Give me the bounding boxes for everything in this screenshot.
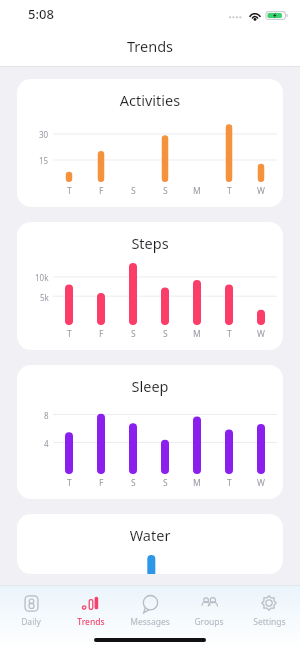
staticText: 4 bbox=[44, 438, 49, 449]
staticText: M bbox=[193, 328, 201, 340]
button[interactable]: Sleep bbox=[17, 365, 283, 499]
other: Settings bbox=[260, 594, 278, 612]
staticText: S bbox=[131, 477, 136, 489]
staticText: 8 bbox=[44, 410, 49, 421]
button[interactable]: Daily bbox=[3, 591, 59, 630]
staticText: Settings bbox=[253, 616, 286, 628]
staticText: F bbox=[99, 185, 104, 197]
other: Daily bbox=[23, 595, 40, 612]
staticText: S bbox=[131, 185, 136, 197]
staticText: S bbox=[131, 328, 136, 340]
staticText: T bbox=[227, 185, 232, 197]
staticText: 5:08 bbox=[28, 5, 54, 23]
button[interactable]: Messages bbox=[122, 591, 178, 630]
staticText: 15 bbox=[39, 155, 49, 166]
other: Messages bbox=[142, 595, 159, 612]
staticText: T bbox=[227, 328, 232, 340]
staticText: Messages bbox=[130, 616, 170, 628]
staticText: W bbox=[257, 185, 265, 197]
staticText: M bbox=[193, 185, 201, 197]
staticText: 5k bbox=[40, 292, 49, 303]
staticText: T bbox=[67, 328, 72, 340]
button[interactable]: Water bbox=[17, 514, 283, 574]
staticText: F bbox=[99, 477, 104, 489]
staticText: Trends bbox=[77, 616, 105, 628]
staticText: 10k bbox=[35, 272, 49, 283]
staticText: Sleep bbox=[17, 376, 283, 396]
staticText: W bbox=[257, 328, 265, 340]
staticText: W bbox=[257, 477, 265, 489]
button[interactable]: Trends bbox=[63, 591, 119, 630]
staticText: S bbox=[163, 477, 168, 489]
staticText: Steps bbox=[17, 233, 283, 253]
staticText: Trends bbox=[127, 36, 174, 56]
staticText: T bbox=[227, 477, 232, 489]
staticText: Activities bbox=[17, 90, 283, 110]
button[interactable]: Settings bbox=[241, 591, 297, 630]
staticText: T bbox=[67, 477, 72, 489]
button[interactable]: Activities bbox=[17, 79, 283, 207]
staticText: F bbox=[99, 328, 104, 340]
staticText: S bbox=[163, 328, 168, 340]
button[interactable]: Steps bbox=[17, 222, 283, 350]
staticText: 30 bbox=[39, 129, 49, 140]
staticText: Water bbox=[17, 525, 283, 545]
staticText: Groups bbox=[194, 616, 224, 628]
staticText: T bbox=[67, 185, 72, 197]
other: Trends bbox=[82, 596, 100, 610]
button[interactable]: Groups bbox=[181, 591, 237, 630]
other: Groups bbox=[200, 596, 219, 610]
staticText: M bbox=[193, 477, 201, 489]
staticText: S bbox=[163, 185, 168, 197]
staticText: Daily bbox=[21, 616, 41, 628]
